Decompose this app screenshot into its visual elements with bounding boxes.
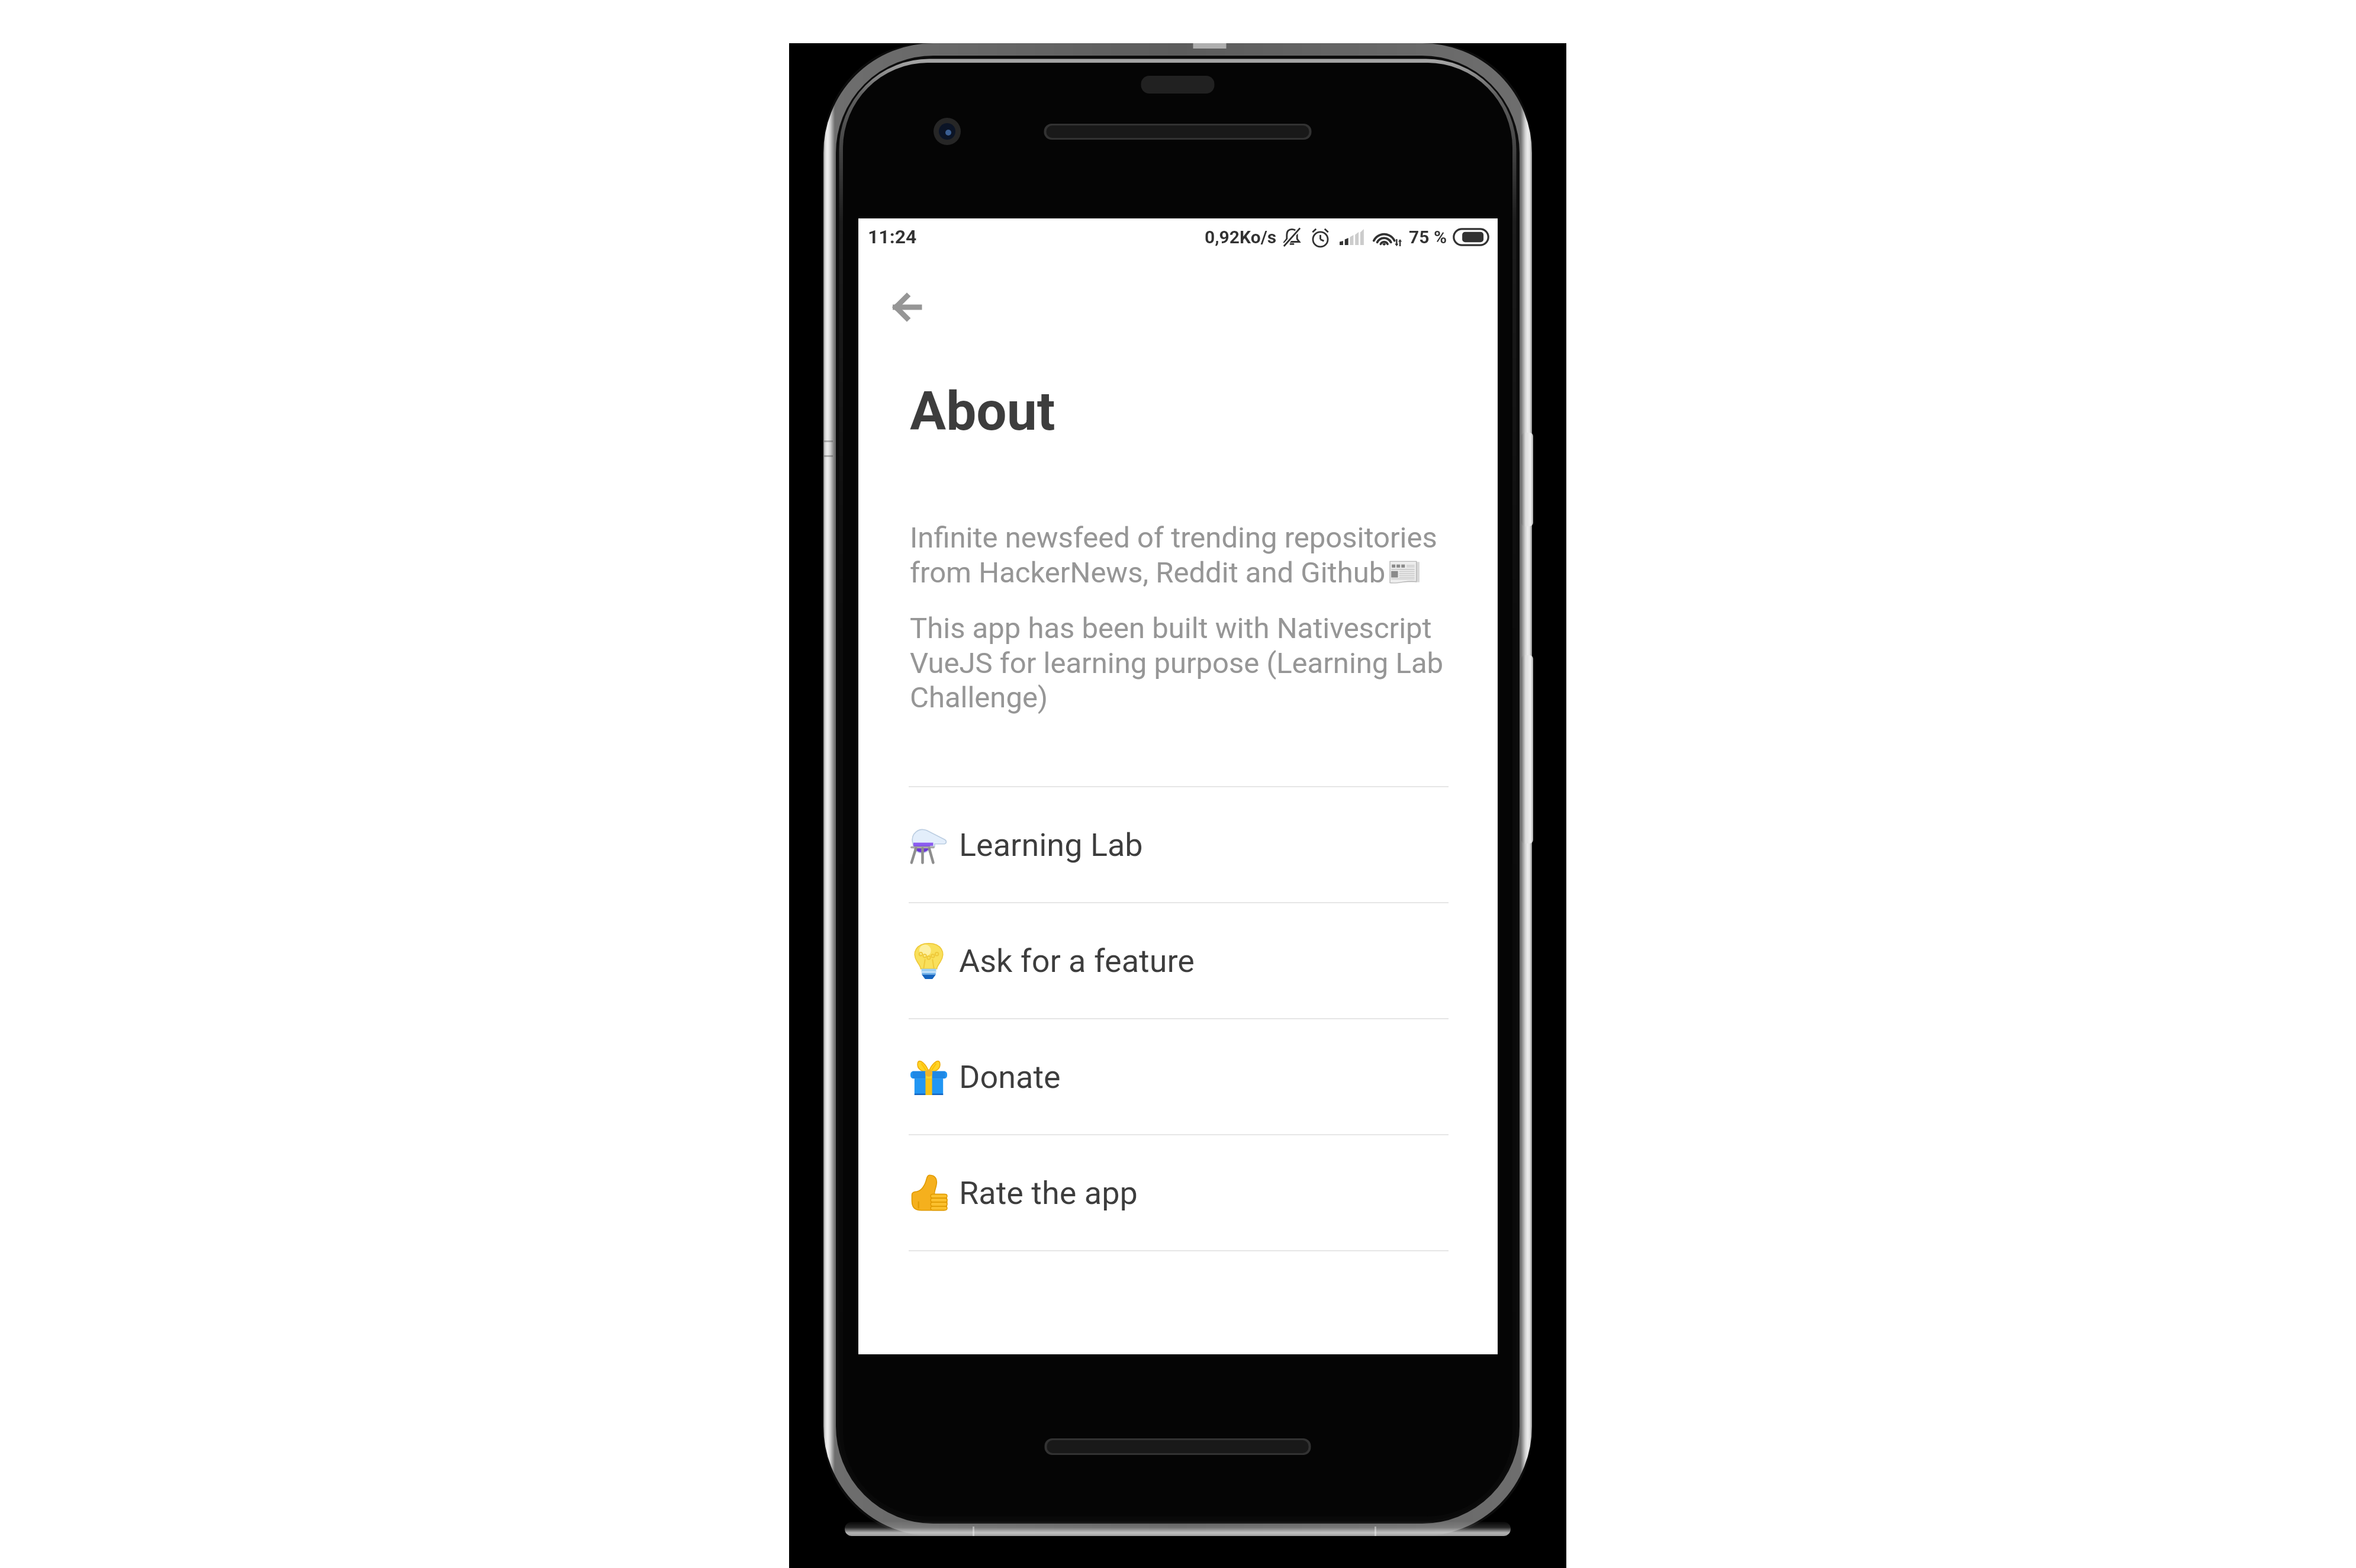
button[interactable]: Learning Lab (858, 787, 1498, 902)
staticText: 11:24 (868, 226, 917, 248)
staticText: Learning Lab (959, 826, 1143, 864)
button[interactable]: Donate (858, 1019, 1498, 1134)
staticText: About (910, 379, 1055, 443)
staticText: Rate the app (959, 1174, 1138, 1212)
button[interactable]: Rate the app (858, 1135, 1498, 1250)
staticText: Ask for a feature (959, 942, 1195, 980)
button[interactable]: Back (871, 275, 942, 340)
staticText: 0,92Ko/s (1205, 227, 1277, 247)
staticText: 75 % (1409, 227, 1447, 247)
staticText: Donate (959, 1058, 1061, 1096)
staticText: This app has been built with Nativescrip… (910, 611, 1444, 714)
button[interactable]: Ask for a feature (858, 903, 1498, 1018)
staticText: Infinite newsfeed of trending repositori… (910, 521, 1444, 590)
